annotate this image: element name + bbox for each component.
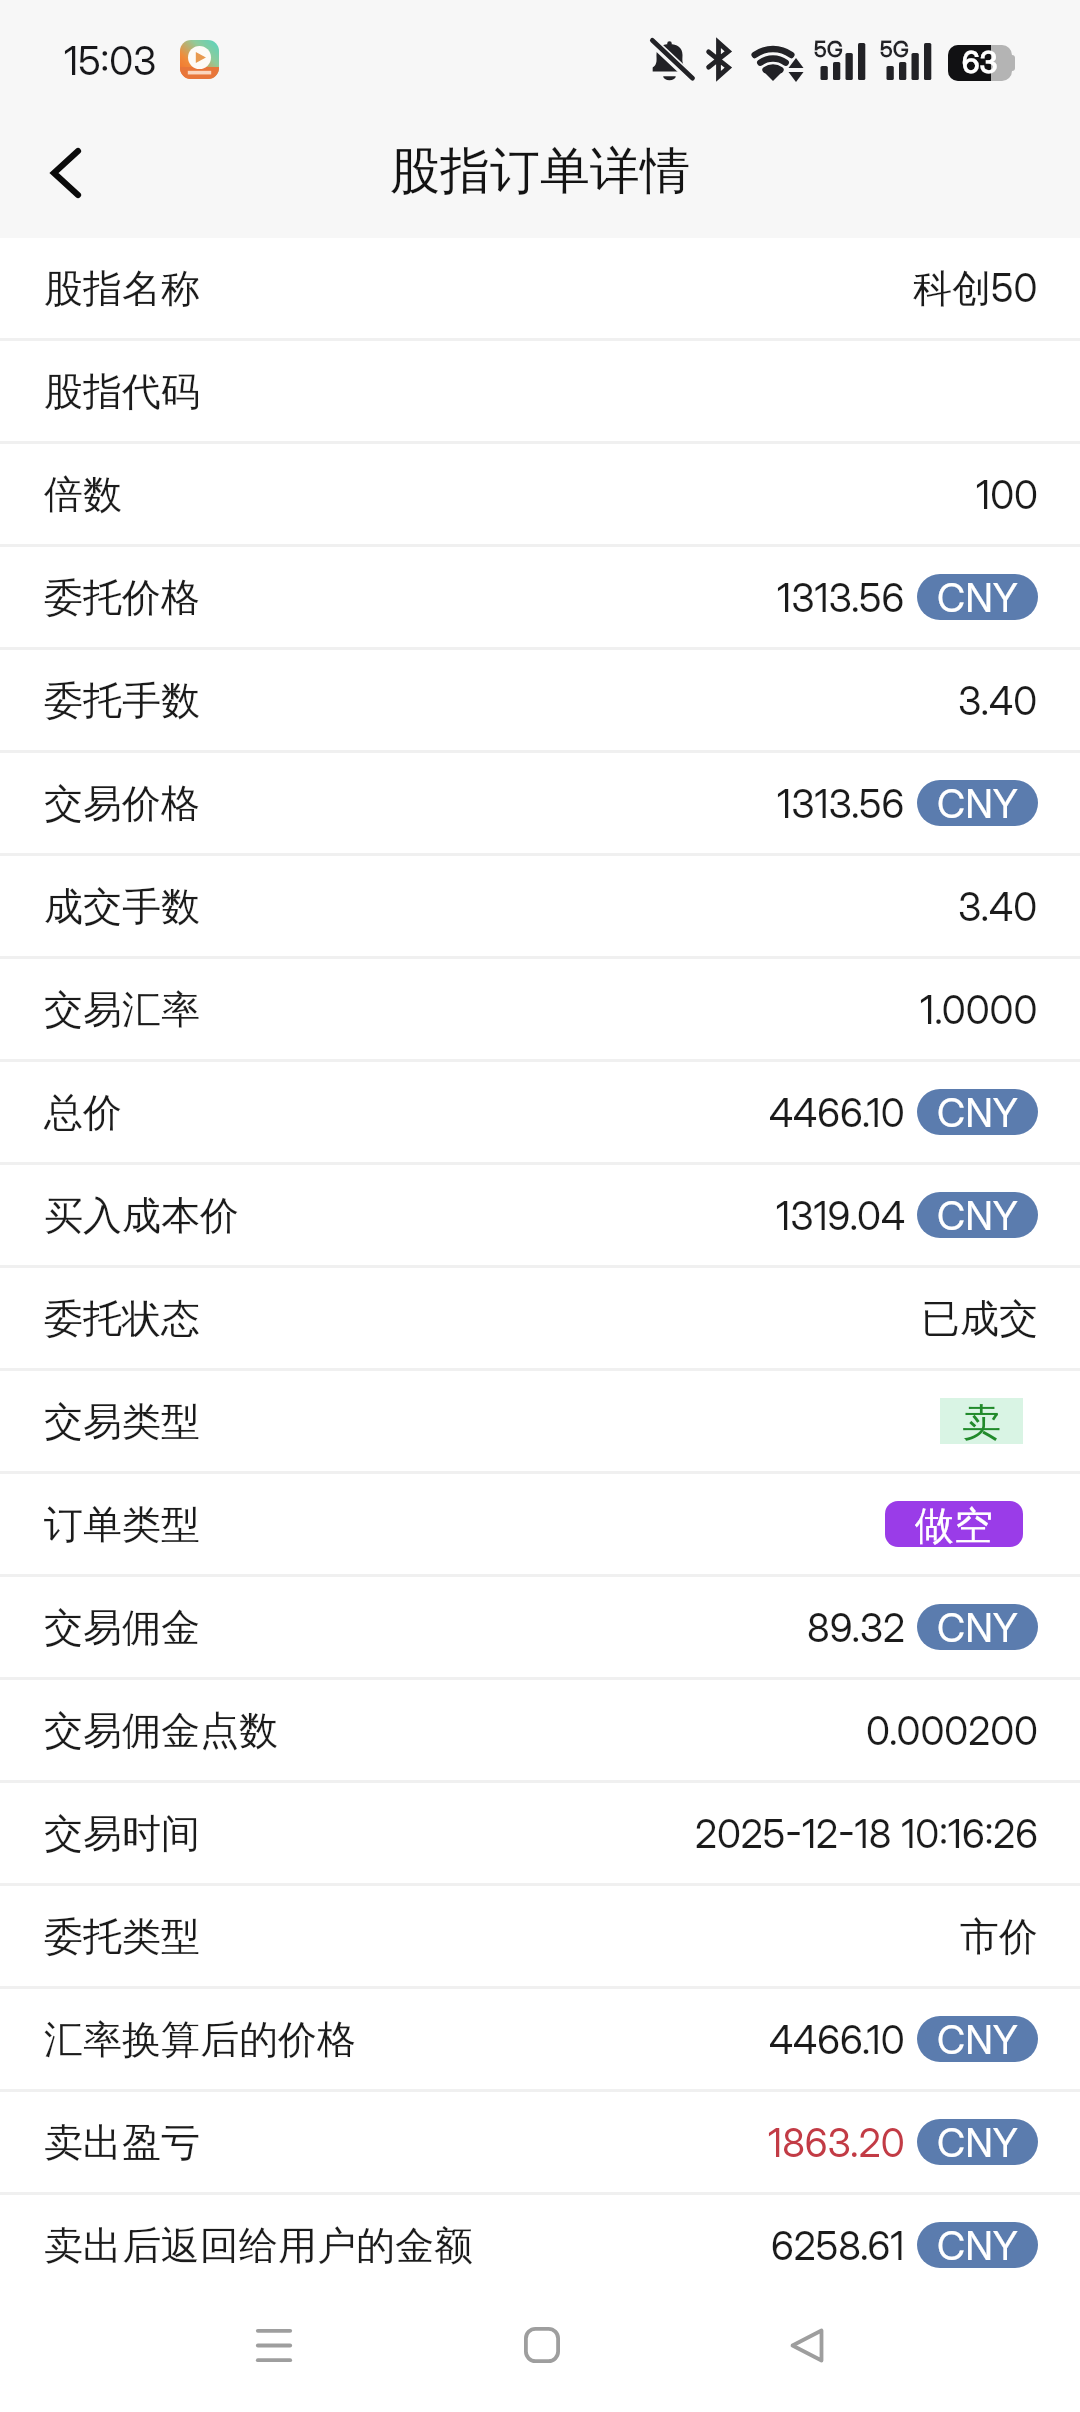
- staticText: 订单类型: [44, 1500, 200, 1549]
- button[interactable]: 交易佣金点数: [0, 1680, 1080, 1780]
- staticText: 4466.10: [769, 1089, 905, 1136]
- button[interactable]: 总价: [0, 1062, 1080, 1162]
- staticText: 3.40: [958, 677, 1038, 724]
- button[interactable]: 卖出后返回给用户的金额: [0, 2195, 1080, 2295]
- button[interactable]: 股指名称: [0, 238, 1080, 338]
- button[interactable]: 汇率换算后的价格: [0, 1989, 1080, 2089]
- button[interactable]: 订单类型: [0, 1474, 1080, 1574]
- staticText: CNY: [937, 1604, 1018, 1650]
- staticText: CNY: [937, 2222, 1018, 2268]
- staticText: 1313.56: [777, 574, 905, 621]
- staticText: 委托价格: [44, 573, 200, 622]
- staticText: 6258.61: [771, 2222, 905, 2269]
- staticText: 股指代码: [44, 367, 200, 416]
- staticText: 63: [962, 45, 998, 80]
- staticText: 交易佣金: [44, 1603, 200, 1652]
- staticText: CNY: [937, 1192, 1018, 1238]
- button[interactable]: 买入成本价: [0, 1165, 1080, 1265]
- staticText: 委托手数: [44, 676, 200, 725]
- staticText: 89.32: [807, 1604, 905, 1651]
- staticText: 总价: [44, 1088, 122, 1137]
- button[interactable]: 委托价格: [0, 547, 1080, 647]
- staticText: CNY: [937, 1089, 1018, 1135]
- staticText: CNY: [937, 2016, 1018, 2062]
- button[interactable]: Home: [462, 2305, 622, 2385]
- button[interactable]: Recent apps: [194, 2305, 354, 2385]
- staticText: 1319.04: [776, 1192, 905, 1239]
- button[interactable]: 股指代码: [0, 341, 1080, 441]
- staticText: 股指名称: [44, 264, 200, 313]
- staticText: 交易类型: [44, 1397, 200, 1446]
- button[interactable]: 成交手数: [0, 856, 1080, 956]
- staticText: 卖出后返回给用户的金额: [44, 2221, 473, 2270]
- staticText: 交易价格: [44, 779, 200, 828]
- staticText: 市价: [960, 1912, 1038, 1961]
- staticText: 已成交: [921, 1294, 1038, 1343]
- staticText: 做空: [915, 1501, 993, 1547]
- staticText: 委托类型: [44, 1912, 200, 1961]
- staticText: 委托状态: [44, 1294, 200, 1343]
- staticText: 1.0000: [920, 986, 1038, 1033]
- staticText: 买入成本价: [44, 1191, 239, 1240]
- staticText: 5G: [814, 36, 843, 63]
- staticText: 1863.20: [768, 2119, 905, 2166]
- staticText: CNY: [937, 2119, 1018, 2165]
- button[interactable]: 卖出盈亏: [0, 2092, 1080, 2192]
- staticText: 汇率换算后的价格: [44, 2015, 356, 2064]
- button[interactable]: 交易价格: [0, 753, 1080, 853]
- staticText: 3.40: [958, 883, 1038, 930]
- staticText: 4466.10: [769, 2016, 905, 2063]
- button[interactable]: 委托类型: [0, 1886, 1080, 1986]
- staticText: 交易汇率: [44, 985, 200, 1034]
- button[interactable]: Back: [727, 2305, 887, 2385]
- button[interactable]: Back: [20, 132, 106, 218]
- button[interactable]: 委托手数: [0, 650, 1080, 750]
- staticText: CNY: [937, 780, 1018, 826]
- staticText: 股指订单详情: [390, 140, 690, 203]
- button[interactable]: 交易类型: [0, 1371, 1080, 1471]
- staticText: CNY: [937, 574, 1018, 620]
- staticText: 15:03: [64, 37, 157, 84]
- staticText: 成交手数: [44, 882, 200, 931]
- button[interactable]: 交易佣金: [0, 1577, 1080, 1677]
- button[interactable]: 交易时间: [0, 1783, 1080, 1883]
- staticText: 科创50: [913, 264, 1038, 313]
- staticText: 交易时间: [44, 1809, 200, 1858]
- button[interactable]: 委托状态: [0, 1268, 1080, 1368]
- staticText: 5G: [880, 36, 909, 63]
- button[interactable]: 交易汇率: [0, 959, 1080, 1059]
- staticText: 卖: [962, 1398, 1001, 1444]
- staticText: 卖出盈亏: [44, 2118, 200, 2167]
- staticText: 2025-12-18 10:16:26: [695, 1810, 1038, 1857]
- staticText: 1313.56: [777, 780, 905, 827]
- staticText: 倍数: [44, 470, 122, 519]
- button[interactable]: 倍数: [0, 444, 1080, 544]
- staticText: 0.000200: [866, 1707, 1038, 1754]
- staticText: 100: [976, 471, 1038, 518]
- staticText: 交易佣金点数: [44, 1706, 278, 1755]
